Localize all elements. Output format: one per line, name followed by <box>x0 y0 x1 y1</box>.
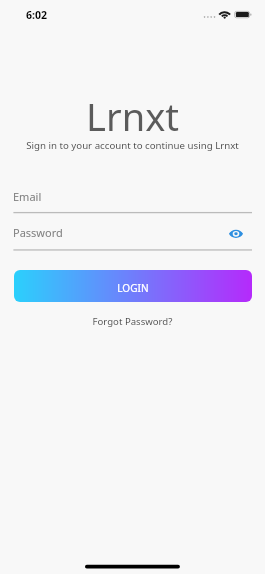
button[interactable]: Password <box>13 223 252 251</box>
staticText: Email <box>13 189 42 204</box>
button[interactable]: Email <box>13 186 252 213</box>
staticText: 6:02 <box>26 8 48 22</box>
button[interactable]: Forgot Password? <box>88 313 177 330</box>
button[interactable]: Show password <box>228 226 244 242</box>
button[interactable]: LOGIN <box>14 270 252 302</box>
staticText: LOGIN <box>14 281 252 295</box>
staticText: Password <box>13 225 63 240</box>
staticText: Sign in to your account to continue usin… <box>0 139 265 152</box>
staticText: Forgot Password? <box>88 315 177 328</box>
staticText: Lrnxt <box>0 90 265 142</box>
